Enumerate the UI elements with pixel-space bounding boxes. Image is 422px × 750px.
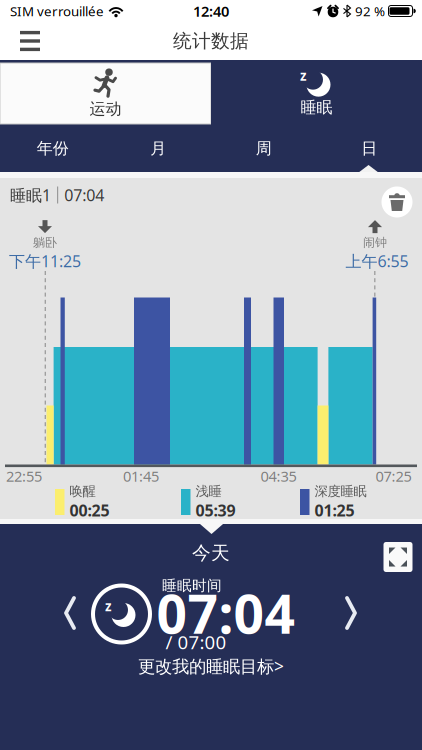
- staticText: 今天: [192, 541, 230, 564]
- button[interactable]: Menu: [0, 23, 40, 59]
- staticText: 07:04: [156, 578, 295, 648]
- button[interactable]: z: [211, 60, 422, 125]
- button[interactable]: Fullscreen: [383, 542, 412, 572]
- staticText: 唤醒: [69, 483, 95, 500]
- staticText: 下午11:25: [9, 250, 81, 272]
- staticText: 01:25: [314, 500, 354, 521]
- staticText: 睡眠时间: [162, 576, 222, 594]
- staticText: 22:55: [6, 466, 42, 486]
- staticText: 05:39: [195, 500, 235, 521]
- button[interactable]: 日: [316, 125, 422, 172]
- button[interactable]: Next day: [337, 588, 365, 638]
- staticText: 运动: [89, 99, 121, 119]
- staticText: 统计数据: [173, 29, 249, 52]
- staticText: 更改我的睡眠目标>: [138, 654, 284, 677]
- staticText: 上午6:55: [345, 250, 408, 272]
- staticText: 月: [150, 139, 166, 158]
- staticText: 深度睡眠: [314, 483, 366, 500]
- staticText: 睡眠1: [10, 184, 51, 206]
- staticText: z: [105, 597, 112, 615]
- staticText: 00:25: [69, 500, 109, 521]
- staticText: 日: [361, 139, 377, 158]
- button[interactable]: 更改我的睡眠目标>: [138, 654, 284, 677]
- button[interactable]: 周: [211, 125, 316, 172]
- staticText: 睡眠: [300, 98, 332, 117]
- button[interactable]: Delete sleep record: [381, 186, 412, 217]
- staticText: 12:40: [193, 1, 229, 21]
- staticText: 闹钟: [363, 235, 387, 250]
- staticText: 浅睡: [195, 483, 221, 500]
- button[interactable]: 运动: [0, 61, 211, 124]
- button[interactable]: 月: [105, 125, 211, 172]
- button[interactable]: Previous day: [56, 588, 84, 638]
- staticText: 躺卧: [33, 235, 57, 250]
- staticText: 周: [256, 139, 272, 158]
- staticText: SIM verrouillée: [10, 2, 104, 20]
- staticText: 07:25: [375, 466, 411, 486]
- button[interactable]: 年份: [0, 125, 105, 172]
- staticText: / 07:00: [165, 630, 226, 654]
- staticText: z: [300, 67, 307, 84]
- staticText: 92 %: [355, 2, 385, 20]
- staticText: 年份: [37, 139, 69, 158]
- staticText: 01:45: [123, 466, 159, 486]
- staticText: 07:04: [64, 184, 104, 206]
- staticText: 04:35: [260, 466, 296, 486]
